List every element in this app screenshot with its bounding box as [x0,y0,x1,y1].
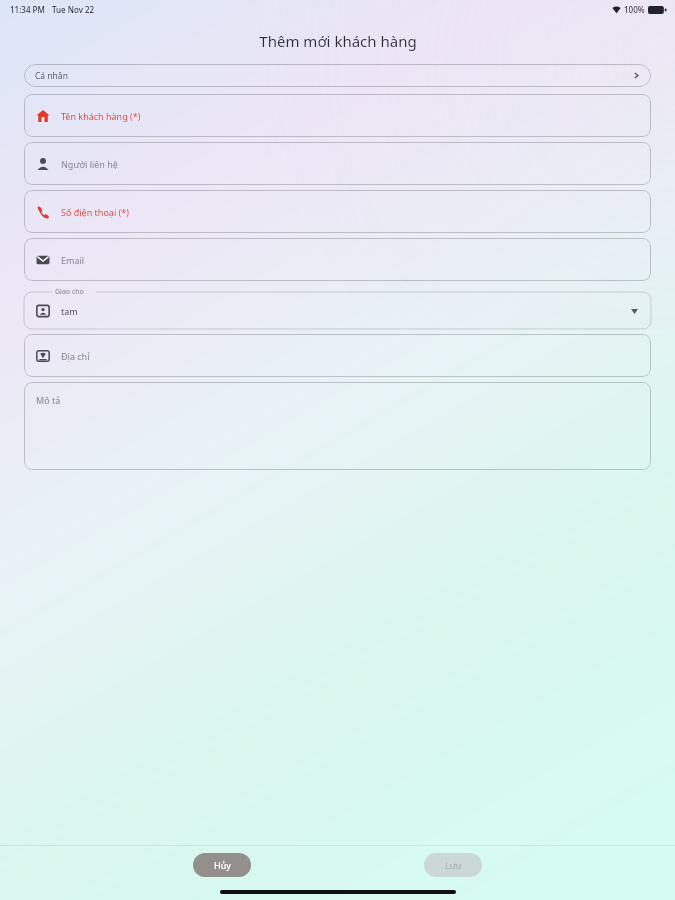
staticText: Cá nhân [35,70,68,82]
staticText: Giao cho [55,287,84,297]
staticText: Lưu [445,859,462,871]
staticText: Email [61,254,85,266]
staticText: 100% [624,4,645,15]
staticText: Tue Nov 22 [52,4,95,15]
button[interactable]: Giao cho [24,286,651,329]
staticText: Thêm mới khách hàng [259,31,417,51]
staticText: tam [61,305,78,317]
button[interactable]: Số điện thoại (*) [24,190,651,233]
staticText: Mô tả [36,394,61,406]
button[interactable]: Người liên hệ [24,142,651,185]
button[interactable]: Tên khách hàng (*) [24,94,651,137]
staticText: 11:34 PM [10,4,45,15]
staticText: Tên khách hàng (*) [61,110,141,122]
button[interactable]: Email [24,238,651,281]
button[interactable]: Hủy [193,853,251,877]
button[interactable]: Địa chỉ [24,334,651,377]
staticText: Người liên hệ [61,158,118,170]
button[interactable]: Lưu [424,853,482,877]
button[interactable]: Mô tả [24,382,651,470]
button[interactable]: Cá nhân [24,64,651,87]
staticText: Hủy [214,859,231,871]
staticText: Địa chỉ [61,350,90,362]
staticText: Số điện thoại (*) [61,206,129,218]
